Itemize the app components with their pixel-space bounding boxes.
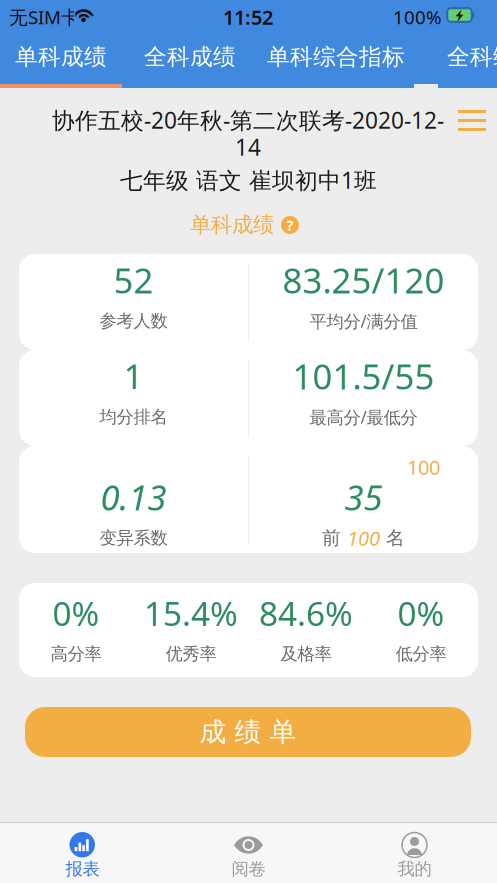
- staticText: 平均分/满分值: [309, 309, 417, 332]
- staticText: 低分率: [395, 643, 446, 665]
- staticText: 变异系数: [99, 527, 167, 549]
- staticText: 1: [123, 353, 143, 399]
- staticText: 单科成绩: [15, 43, 107, 71]
- staticText: 参考人数: [99, 310, 167, 332]
- staticText: 报表: [65, 858, 99, 880]
- staticText: 0.13: [100, 474, 166, 520]
- staticText: 我的: [397, 858, 431, 880]
- staticText: 全科成绩: [144, 43, 236, 71]
- staticText: 前: [322, 526, 341, 549]
- staticText: 协作五校-20年秋-第二次联考-2020-12-: [52, 105, 444, 135]
- staticText: 11:52: [223, 4, 273, 30]
- button[interactable]: 阅卷: [166, 823, 331, 883]
- button[interactable]: 成 绩 单: [25, 707, 471, 757]
- staticText: 全科综合指标: [447, 43, 497, 71]
- staticText: 成 绩 单: [199, 716, 296, 748]
- staticText: 100%: [393, 5, 442, 29]
- button[interactable]: 菜单: [451, 103, 495, 143]
- staticText: 均分排名: [99, 406, 167, 428]
- staticText: ?: [286, 215, 293, 235]
- staticText: 高分率: [50, 643, 101, 665]
- staticText: 单科成绩: [190, 212, 274, 238]
- staticText: 84.6%: [259, 591, 353, 635]
- staticText: 阅卷: [231, 858, 265, 880]
- staticText: 单科综合指标: [267, 43, 405, 71]
- staticText: 无SIM卡: [9, 5, 80, 29]
- staticText: 100: [347, 525, 380, 551]
- staticText: 35: [344, 474, 382, 520]
- staticText: 83.25/120: [282, 257, 444, 303]
- button[interactable]: 单科综合指标: [258, 34, 414, 88]
- staticText: 及格率: [280, 643, 331, 665]
- staticText: 14: [235, 132, 261, 162]
- staticText: 0%: [397, 591, 444, 635]
- button[interactable]: 全科综合指标: [438, 34, 497, 88]
- button[interactable]: 全科成绩: [122, 34, 258, 88]
- staticText: 101.5/55: [292, 353, 434, 399]
- staticText: 15.4%: [144, 591, 238, 635]
- staticText: 优秀率: [165, 643, 216, 665]
- staticText: 最高分/最低分: [309, 405, 417, 428]
- button[interactable]: 我的: [332, 823, 497, 883]
- staticText: 名: [386, 526, 405, 549]
- staticText: 100: [407, 454, 440, 480]
- button[interactable]: 单科成绩: [0, 34, 122, 88]
- staticText: 0%: [52, 591, 99, 635]
- staticText: 七年级 语文 崔坝初中1班: [120, 165, 377, 195]
- staticText: 52: [113, 257, 153, 303]
- button[interactable]: 报表: [0, 823, 165, 883]
